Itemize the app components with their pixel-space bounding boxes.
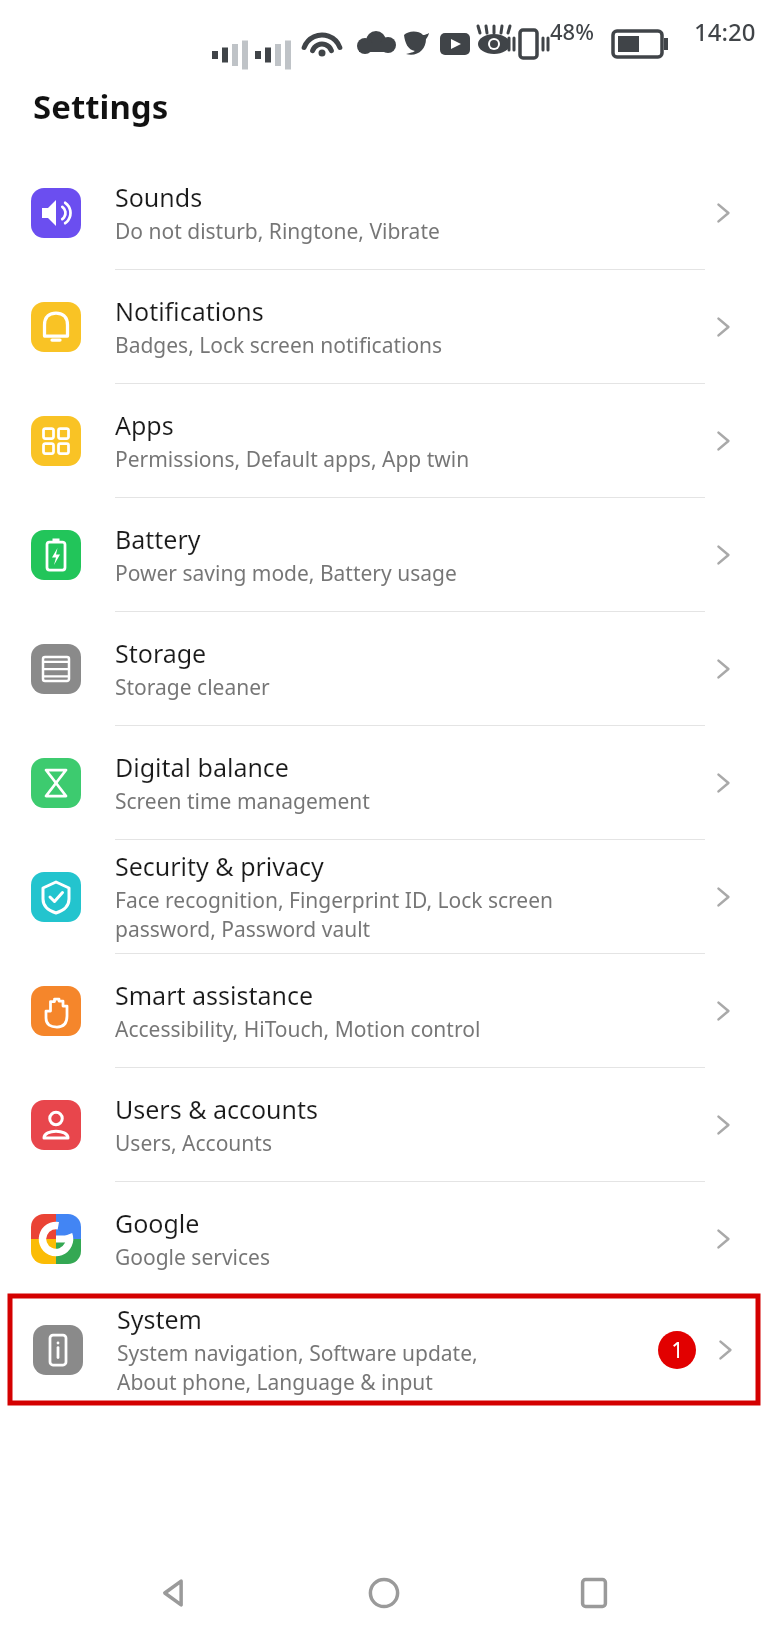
staticText: System navigation, Software update, [117,1339,478,1368]
button[interactable]: Users & accounts [0,1068,768,1181]
staticText: Storage [115,636,207,670]
staticText: Users, Accounts [115,1129,272,1158]
staticText: Smart assistance [115,978,313,1012]
staticText: Google services [115,1243,270,1272]
staticText: 48% [550,16,594,46]
staticText: Badges, Lock screen notifications [115,331,443,360]
button[interactable]: Storage [0,612,768,725]
staticText: 1 [671,1336,684,1365]
button[interactable]: Notifications [0,270,768,383]
button[interactable]: Home [349,1558,419,1628]
button[interactable]: Recents [559,1558,629,1628]
staticText: Power saving mode, Battery usage [115,559,457,588]
staticText: Settings [33,84,169,129]
staticText: Security & privacy [115,849,324,883]
button[interactable]: Sounds [0,156,768,269]
staticText: Sounds [115,180,203,214]
button[interactable]: System [10,1296,758,1403]
staticText: password, Password vault [115,915,371,944]
button[interactable]: Smart assistance [0,954,768,1067]
staticText: Storage cleaner [115,673,270,702]
staticText: System [117,1302,202,1336]
button[interactable]: Back [140,1558,210,1628]
staticText: Face recognition, Fingerprint ID, Lock s… [115,886,553,915]
staticText: Screen time management [115,787,370,816]
staticText: 14:20 [694,15,756,48]
button[interactable]: Battery [0,498,768,611]
button[interactable]: Digital balance [0,726,768,839]
staticText: Battery [115,522,201,556]
button[interactable]: Security & privacy [0,840,768,953]
staticText: Accessibility, HiTouch, Motion control [115,1015,481,1044]
staticText: Permissions, Default apps, App twin [115,445,470,474]
staticText: About phone, Language & input [117,1368,433,1397]
staticText: Digital balance [115,750,289,784]
button[interactable]: Google [0,1182,768,1295]
staticText: Apps [115,408,174,442]
staticText: Google [115,1206,200,1240]
staticText: Users & accounts [115,1092,319,1126]
staticText: Notifications [115,294,264,328]
staticText: Do not disturb, Ringtone, Vibrate [115,217,440,246]
button[interactable]: Apps [0,384,768,497]
